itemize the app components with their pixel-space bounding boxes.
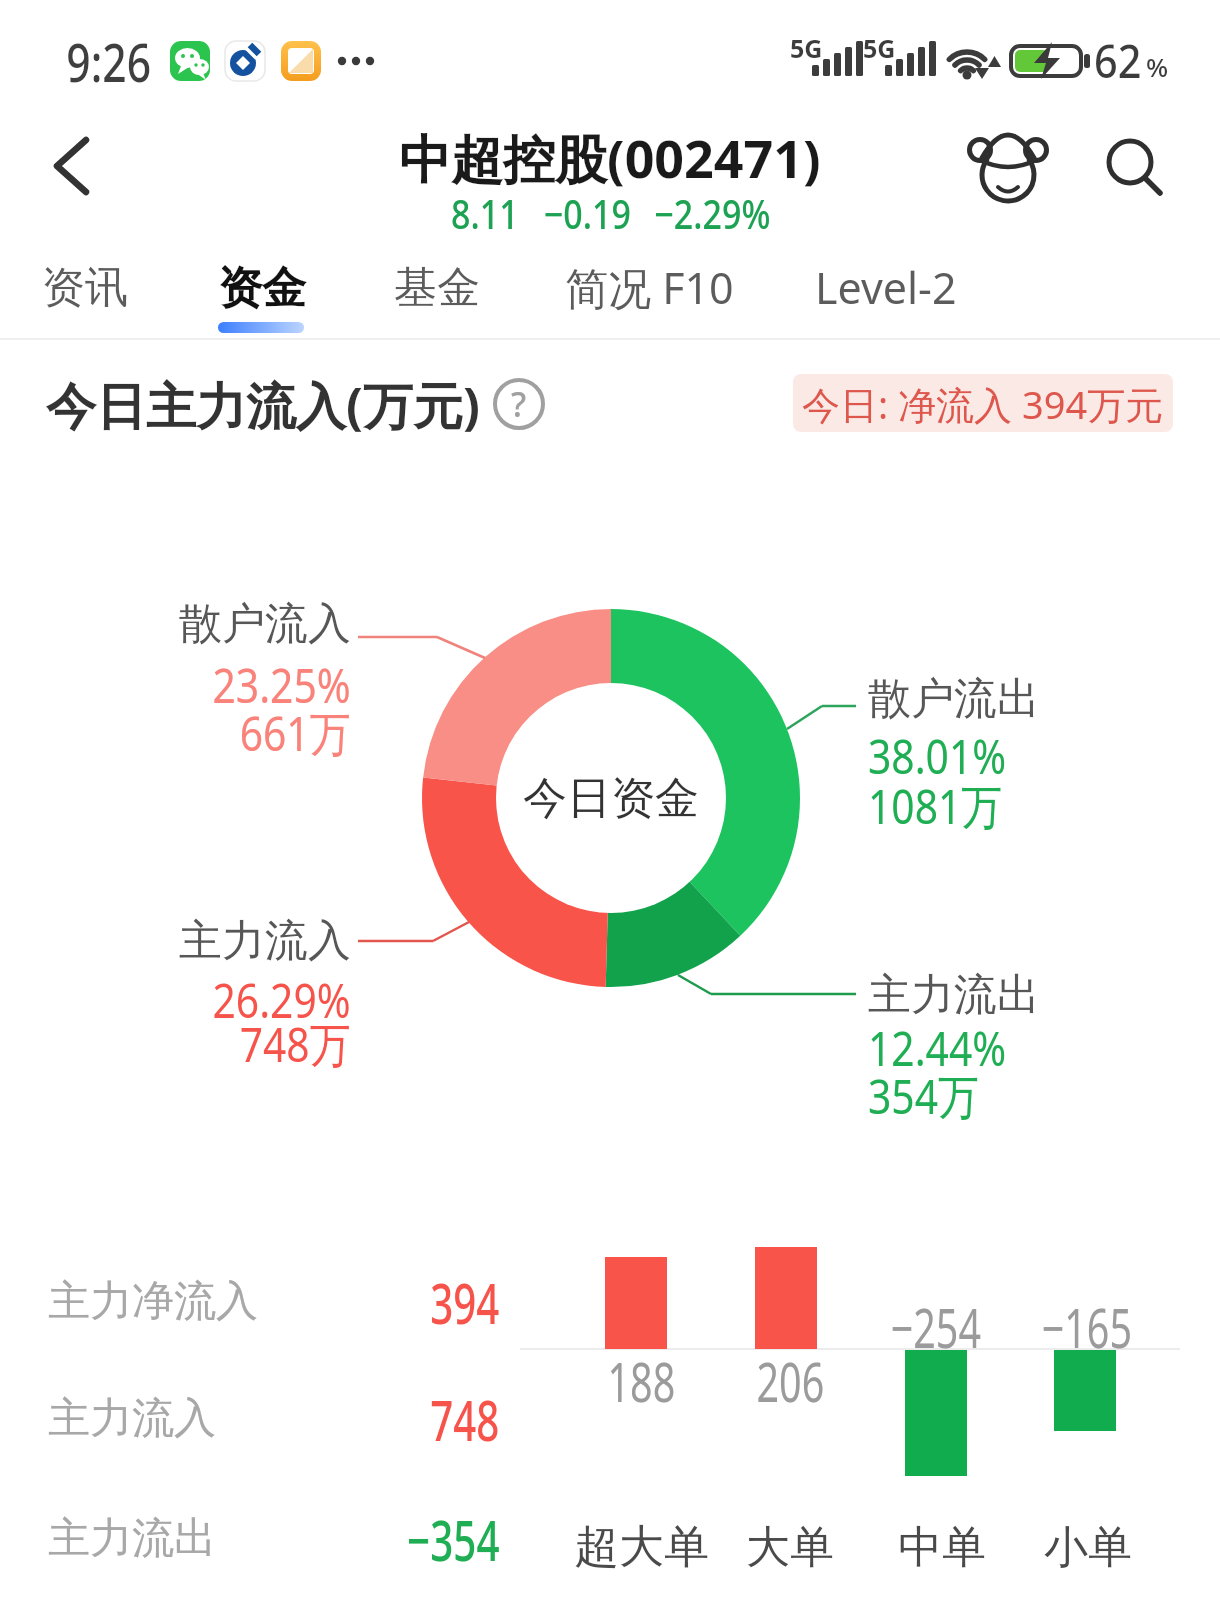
staticText: 主力流出 [868, 968, 1040, 1022]
staticText: 主力流入 [48, 1392, 216, 1445]
staticText: 8.11 [451, 186, 519, 240]
staticText: 354万 [868, 1063, 979, 1129]
staticText: −165 [1042, 1290, 1132, 1364]
staticText: 小单 [1044, 1520, 1132, 1575]
staticText: 中超控股(002471) [399, 122, 821, 193]
staticText: 超大单 [574, 1519, 709, 1576]
staticText: 主力流出 [48, 1512, 216, 1565]
staticText: 5G [863, 31, 896, 65]
staticText: 62 [1094, 29, 1142, 92]
staticText: 26.29% [212, 967, 351, 1032]
staticText: 资讯 [42, 261, 128, 315]
staticText: 散户流出 [868, 672, 1040, 726]
button[interactable]: 资金 [0, 251, 582, 326]
button[interactable]: 简况 F10 [329, 251, 969, 324]
staticText: 394 [430, 1264, 500, 1340]
staticText: 1081万 [868, 773, 1002, 839]
staticText: −354 [407, 1501, 500, 1577]
button[interactable] [975, 135, 1045, 205]
staticText: 5G [790, 31, 823, 65]
staticText: 简况 F10 [565, 258, 734, 317]
staticText: 9:26 [66, 26, 152, 97]
staticText: 大单 [746, 1520, 834, 1575]
staticText: 748万 [240, 1011, 351, 1077]
button[interactable] [1100, 135, 1170, 205]
staticText: 今日: 净流入 394万元 [802, 378, 1164, 430]
staticText: ? [511, 381, 527, 427]
staticText: −2.29% [654, 186, 771, 240]
staticText: 主力流入 [179, 914, 351, 968]
button[interactable] [40, 130, 110, 200]
button[interactable]: 资讯 [0, 251, 405, 324]
button[interactable]: 基金 [117, 251, 757, 324]
staticText: 23.25% [212, 652, 351, 717]
staticText: 188 [608, 1344, 675, 1418]
staticText: Level-2 [815, 258, 957, 317]
staticText: 661万 [240, 700, 351, 766]
staticText: −0.19 [544, 186, 631, 240]
button[interactable]: Level-2 [566, 251, 1206, 324]
staticText: 主力净流入 [48, 1275, 258, 1328]
staticText: 206 [757, 1344, 824, 1418]
staticText: 中单 [898, 1520, 986, 1575]
staticText: 今日主力流入(万元) [46, 371, 480, 439]
staticText: 基金 [394, 261, 480, 315]
staticText: 今日资金 [523, 771, 699, 826]
staticText: 38.01% [868, 723, 1006, 788]
staticText: 资金 [218, 261, 306, 316]
staticText: 12.44% [868, 1015, 1006, 1080]
staticText: 748 [430, 1381, 500, 1457]
staticText: 散户流入 [179, 597, 351, 651]
button[interactable]: 今日: 净流入 394万元 [663, 371, 1220, 436]
staticText: −254 [891, 1290, 981, 1364]
staticText: % [1146, 49, 1169, 84]
